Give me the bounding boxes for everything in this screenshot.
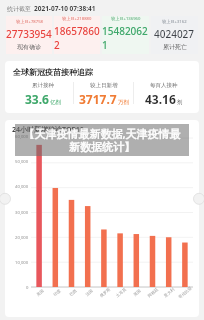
button[interactable]: 较上日+3162: [151, 16, 198, 54]
staticText: 亿剂: [50, 99, 61, 106]
button[interactable]: 累计接种: [13, 82, 73, 107]
staticText: 20,000: [15, 235, 29, 241]
staticText: 43.16: [145, 91, 176, 107]
staticText: 10,000: [15, 260, 29, 266]
staticText: 40,000: [15, 184, 29, 190]
staticText: 巴西: [68, 288, 78, 297]
staticText: 0: [26, 285, 29, 291]
staticText: 土耳其: [115, 287, 127, 298]
staticText: 较上日+218880: [62, 16, 92, 22]
staticText: 阿根廷: [147, 287, 159, 298]
button[interactable]: 60,000: [5, 120, 199, 317]
button[interactable]: 每百人接种: [134, 82, 193, 107]
button[interactable]: 全球新冠疫苗接种追踪: [5, 61, 199, 113]
staticText: 统计截至: [7, 5, 31, 13]
button[interactable]: 较上日+78758: [6, 16, 52, 54]
staticText: 【天津疫情最新数据,天津疫情最新数据统计】: [19, 126, 185, 155]
button[interactable]: 较上日+218880: [54, 16, 100, 54]
staticText: 4024027: [154, 27, 195, 41]
staticText: 50,000: [15, 159, 29, 165]
staticText: 较上日+3162: [162, 19, 187, 25]
staticText: 30,000: [15, 210, 29, 216]
staticText: 较上日+78758: [16, 19, 43, 25]
other: 水印: [15, 124, 189, 156]
staticText: 较上日+136960: [111, 16, 141, 22]
staticText: 较上日新增: [90, 82, 118, 89]
staticText: 印度: [52, 288, 62, 297]
staticText: 剂: [177, 99, 183, 106]
staticText: 哥伦比亚: [177, 285, 193, 299]
button[interactable]: 较上日新增: [74, 82, 133, 107]
staticText: 俄罗斯: [99, 287, 111, 298]
staticText: 186578602: [54, 24, 100, 52]
staticText: 3717.7: [79, 91, 117, 107]
staticText: 154820621: [102, 24, 149, 52]
staticText: 法国: [84, 288, 94, 297]
staticText: 累计死亡: [163, 43, 187, 51]
staticText: 万剂: [118, 99, 129, 106]
staticText: 全球新冠疫苗接种追踪: [13, 67, 93, 77]
button[interactable]: 较上日+136960: [102, 16, 149, 54]
staticText: 27733954: [6, 27, 52, 41]
staticText: 现有确诊: [17, 43, 41, 51]
staticText: 33.6: [25, 91, 49, 107]
staticText: 每百人接种: [150, 82, 178, 89]
staticText: 2021-07-10 07:38:41: [34, 4, 96, 13]
staticText: 美国: [35, 288, 45, 297]
staticText: 24小时新增确诊TOP10: [12, 125, 84, 135]
staticText: 意大利: [163, 287, 175, 298]
staticText: 累计接种: [32, 82, 54, 89]
staticText: 60,000: [15, 134, 29, 140]
staticText: 英国: [132, 288, 142, 297]
